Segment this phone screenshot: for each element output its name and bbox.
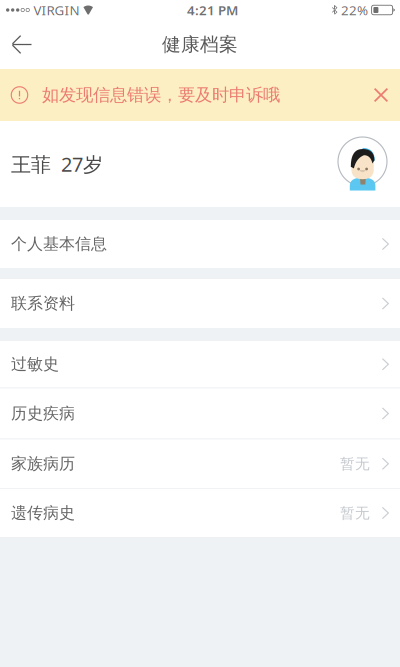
staticText: 历史疾病 (11, 404, 75, 423)
button[interactable]: 家族病历 (0, 439, 400, 488)
button[interactable]: Back (0, 20, 46, 68)
staticText: 联系资料 (11, 294, 75, 313)
staticText: 如发现信息错误，要及时申诉哦 (42, 84, 280, 106)
button[interactable]: 个人基本信息 (0, 220, 400, 268)
button[interactable]: 遗传病史 (0, 489, 400, 537)
button[interactable]: Dismiss notice (368, 82, 394, 108)
staticText: VIRGIN (33, 1, 79, 19)
staticText: 4:21 PM (187, 1, 238, 19)
staticText: 暂无 (340, 504, 370, 522)
staticText: 个人基本信息 (11, 234, 107, 254)
staticText: 遗传病史 (11, 503, 75, 523)
button[interactable]: 过敏史 (0, 341, 400, 387)
staticText: 家族病历 (11, 454, 75, 474)
staticText: 王菲 27岁 (11, 151, 103, 177)
button[interactable]: 历史疾病 (0, 388, 400, 438)
staticText: 暂无 (340, 455, 370, 473)
button[interactable]: 联系资料 (0, 279, 400, 328)
staticText: 过敏史 (11, 354, 59, 374)
staticText: 健康档案 (162, 33, 238, 56)
staticText: 22% (341, 1, 368, 19)
